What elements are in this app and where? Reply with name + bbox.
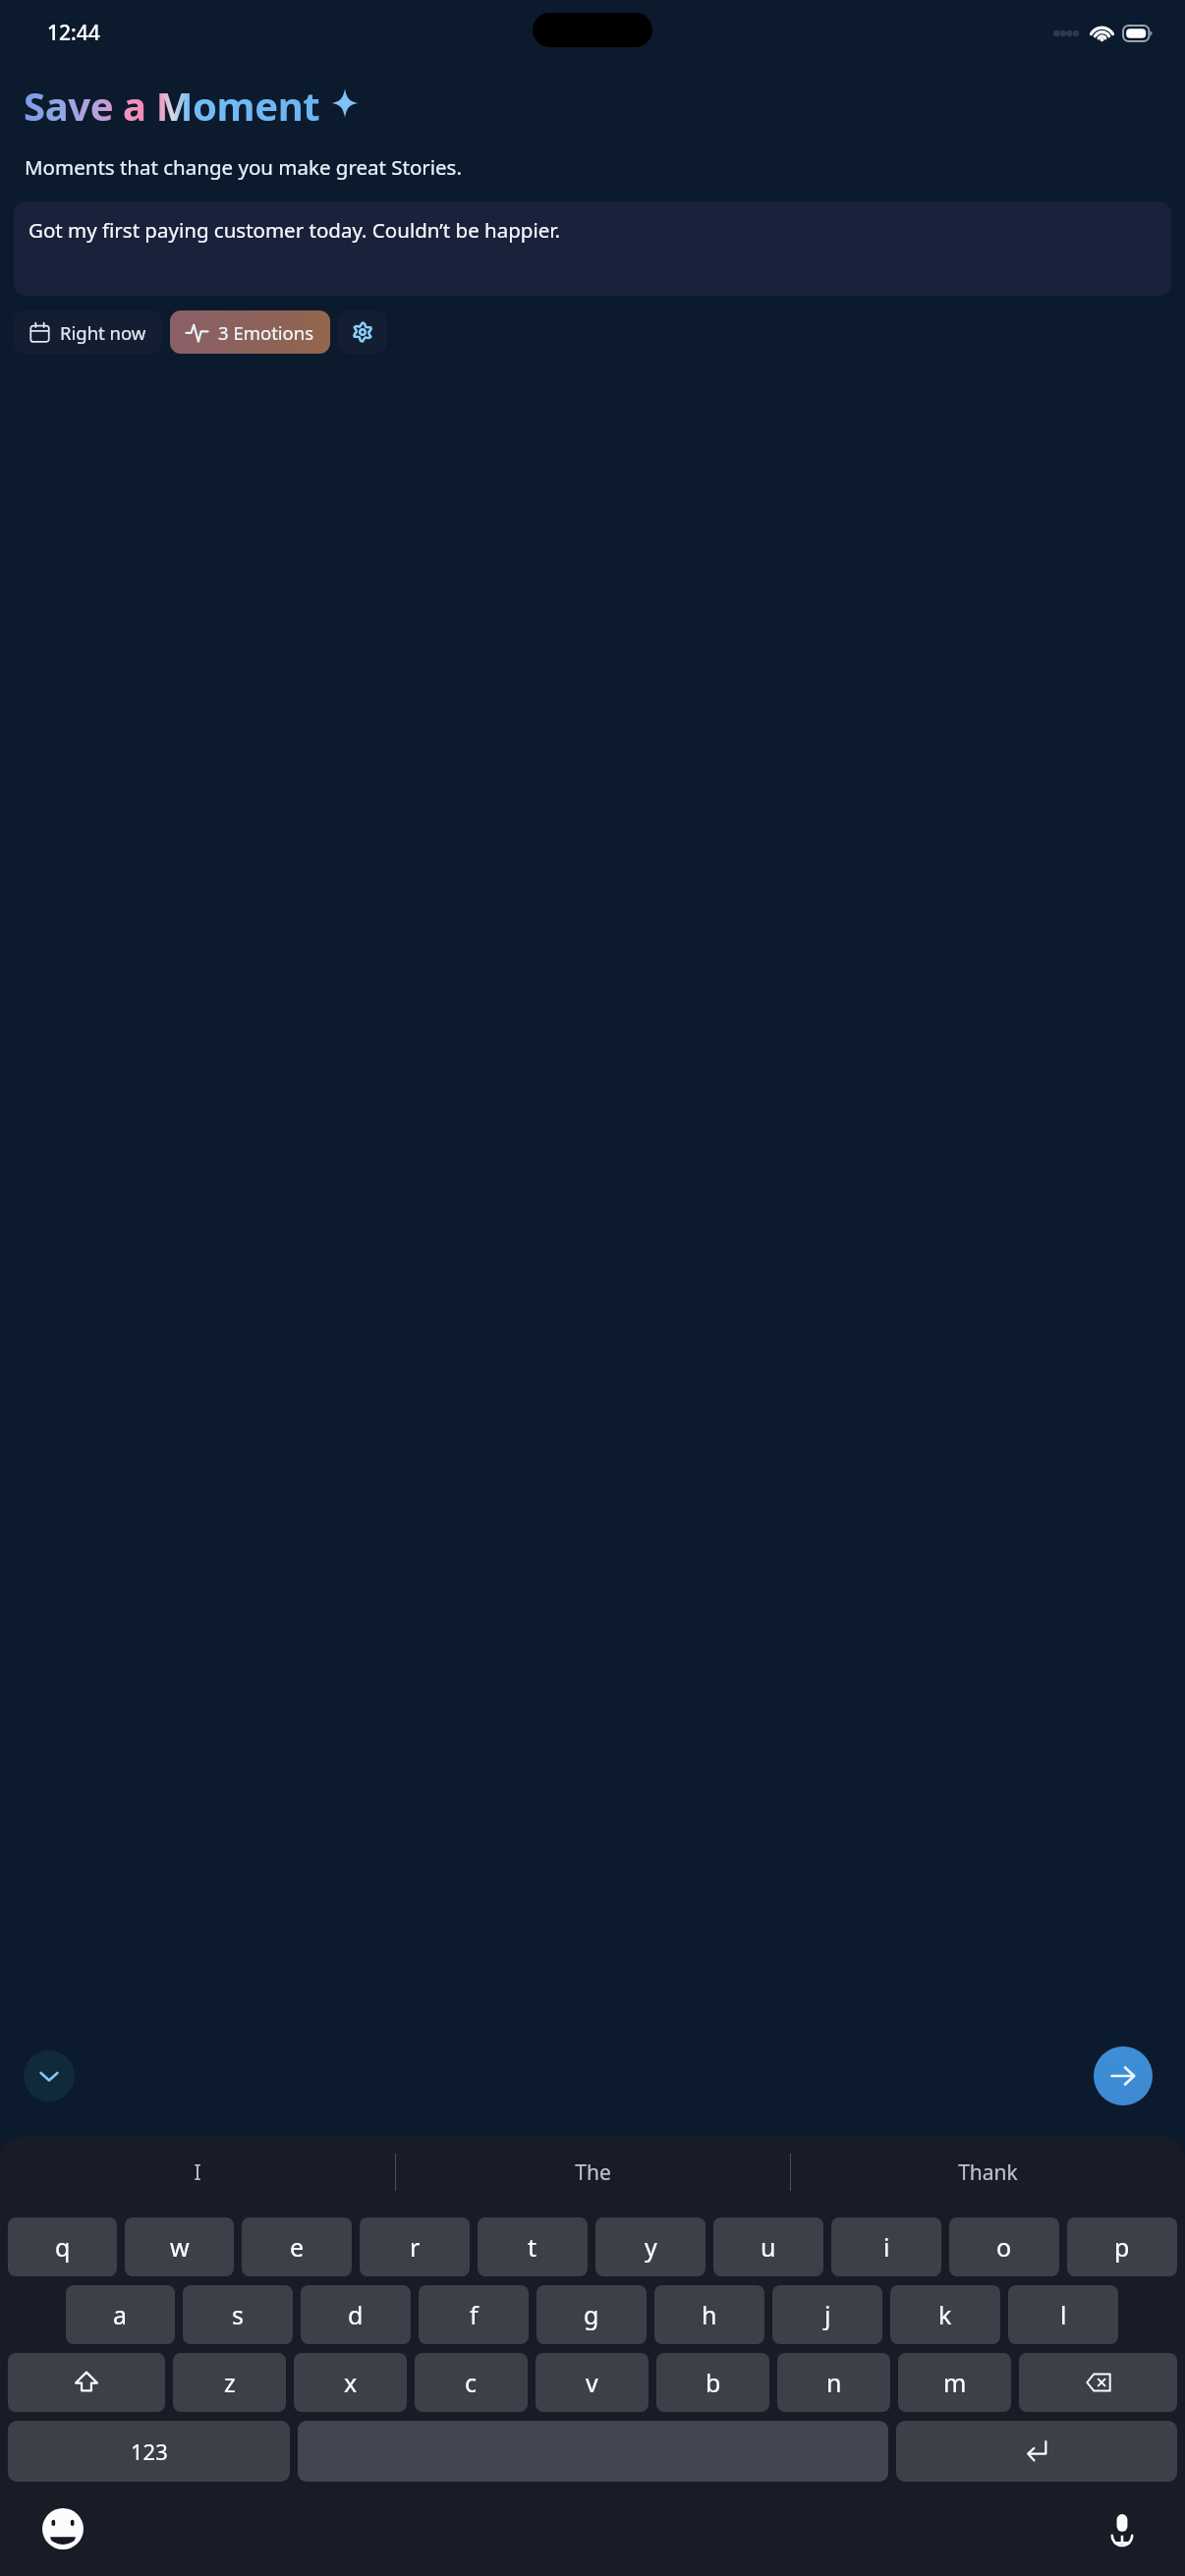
button[interactable]: o xyxy=(949,2217,1059,2276)
button[interactable]: Shift xyxy=(8,2353,165,2412)
button[interactable]: Collapse xyxy=(24,2050,75,2101)
staticText: g xyxy=(584,2298,599,2331)
button[interactable]: w xyxy=(125,2217,234,2276)
staticText: j xyxy=(824,2298,831,2331)
staticText: z xyxy=(224,2366,236,2399)
staticText: n xyxy=(826,2366,842,2399)
button[interactable]: j xyxy=(772,2285,882,2344)
staticText: o xyxy=(996,2230,1012,2264)
button[interactable]: k xyxy=(890,2285,1000,2344)
staticText: x xyxy=(344,2366,358,2399)
staticText: t xyxy=(528,2230,537,2264)
button[interactable]: n xyxy=(777,2353,890,2412)
staticText: 3 Emotions xyxy=(218,320,314,345)
button[interactable]: q xyxy=(8,2217,117,2276)
staticText: 123 xyxy=(131,2436,168,2466)
button[interactable]: r xyxy=(360,2217,470,2276)
button[interactable]: Thank xyxy=(791,2137,1185,2208)
button[interactable]: i xyxy=(831,2217,941,2276)
button[interactable]: Settings xyxy=(338,310,387,354)
staticText: d xyxy=(348,2298,364,2331)
staticText: u xyxy=(761,2230,776,2264)
button[interactable]: m xyxy=(898,2353,1011,2412)
staticText: r xyxy=(410,2230,421,2264)
button[interactable]: h xyxy=(654,2285,764,2344)
staticText: a xyxy=(113,2298,128,2331)
staticText: w xyxy=(170,2230,190,2264)
staticText: e xyxy=(290,2230,305,2264)
staticText: f xyxy=(470,2298,479,2331)
button[interactable]: Emoji xyxy=(35,2501,90,2556)
staticText: Moments that change you make great Stori… xyxy=(25,153,462,181)
button[interactable]: Right now xyxy=(14,310,162,354)
staticText: c xyxy=(465,2366,478,2399)
button[interactable]: x xyxy=(294,2353,407,2412)
button[interactable]: l xyxy=(1008,2285,1118,2344)
staticText: Thank xyxy=(958,2158,1018,2187)
staticText: Got my first paying customer today. Coul… xyxy=(28,216,560,244)
button[interactable]: a xyxy=(66,2285,175,2344)
button[interactable]: Continue xyxy=(1094,2046,1153,2105)
staticText: I xyxy=(194,2158,201,2187)
button[interactable]: s xyxy=(183,2285,293,2344)
staticText: h xyxy=(702,2298,717,2331)
staticText: i xyxy=(883,2230,890,2264)
button[interactable]: p xyxy=(1067,2217,1177,2276)
button[interactable]: 3 Emotions xyxy=(170,310,330,354)
button[interactable]: Got my first paying customer today. Coul… xyxy=(14,201,1171,296)
button[interactable]: b xyxy=(656,2353,769,2412)
staticText: m xyxy=(943,2366,967,2399)
button[interactable]: 123 xyxy=(8,2421,290,2482)
button[interactable]: The xyxy=(396,2137,790,2208)
staticText: b xyxy=(705,2366,721,2399)
button[interactable]: d xyxy=(301,2285,411,2344)
staticText: s xyxy=(232,2298,244,2331)
button[interactable]: v xyxy=(536,2353,649,2412)
button[interactable]: Enter xyxy=(896,2421,1177,2482)
button[interactable]: c xyxy=(415,2353,528,2412)
button[interactable]: I xyxy=(0,2137,395,2208)
staticText: v xyxy=(586,2366,598,2399)
button[interactable]: t xyxy=(478,2217,588,2276)
staticText: l xyxy=(1060,2298,1067,2331)
button[interactable]: y xyxy=(595,2217,705,2276)
button[interactable]: z xyxy=(173,2353,286,2412)
staticText: y xyxy=(645,2230,657,2264)
staticText: p xyxy=(1114,2230,1130,2264)
staticText: Save a Moment xyxy=(24,79,320,132)
staticText: Right now xyxy=(60,320,146,345)
button[interactable]: Backspace xyxy=(1019,2353,1177,2412)
button[interactable]: f xyxy=(419,2285,529,2344)
staticText: The xyxy=(575,2158,611,2187)
button[interactable]: u xyxy=(713,2217,823,2276)
button[interactable]: e xyxy=(242,2217,352,2276)
staticText: k xyxy=(938,2298,952,2331)
button[interactable]: g xyxy=(536,2285,647,2344)
staticText: q xyxy=(55,2230,71,2264)
button[interactable]: Voice input xyxy=(1095,2501,1150,2556)
staticText: 12:44 xyxy=(47,19,100,47)
